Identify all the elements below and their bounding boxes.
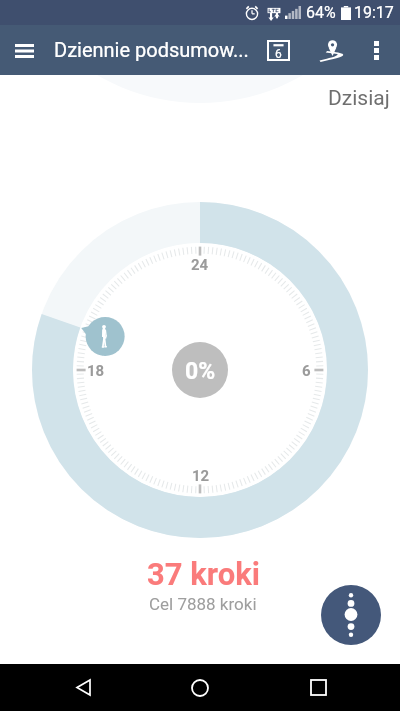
button[interactable]: Menu: [2, 25, 46, 75]
staticText: 19:17: [354, 3, 394, 22]
staticText: 64%: [306, 3, 336, 22]
button[interactable]: More options: [354, 25, 398, 75]
button[interactable]: Calendar day 6: [256, 25, 300, 75]
staticText: 6: [302, 362, 311, 380]
staticText: Dzisiaj: [328, 86, 390, 111]
staticText: 12: [192, 467, 210, 485]
button[interactable]: Map: [310, 25, 354, 75]
staticText: Dziennie podsumow...: [54, 38, 249, 61]
button[interactable]: Home: [165, 664, 235, 711]
button[interactable]: Activity: [321, 585, 381, 645]
button[interactable]: Back: [48, 664, 118, 711]
staticText: 6: [275, 47, 282, 61]
staticText: 0%: [185, 358, 216, 385]
staticText: Cel 7888 kroki: [149, 594, 257, 614]
staticText: 37 kroki: [147, 556, 260, 592]
staticText: 18: [87, 362, 105, 380]
staticText: 24: [191, 256, 209, 274]
button[interactable]: Recents: [283, 664, 353, 711]
